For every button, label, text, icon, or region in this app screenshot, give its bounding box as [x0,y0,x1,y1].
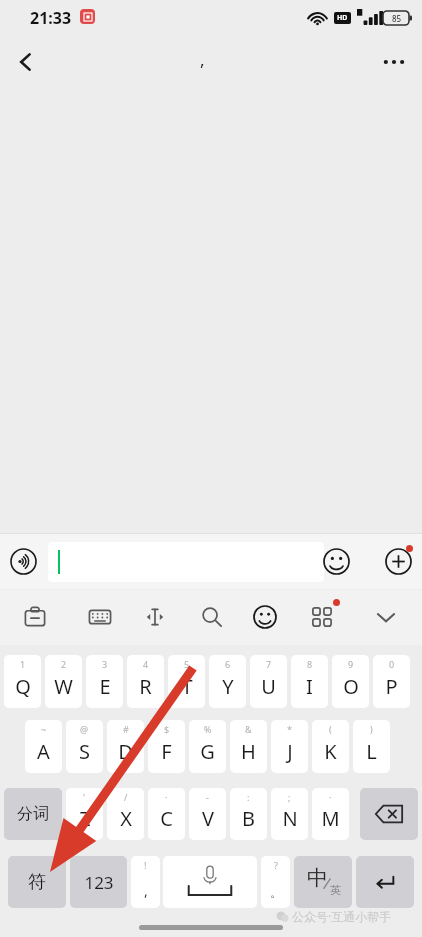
button[interactable]: 5 [168,655,205,708]
staticText: * [287,723,292,735]
staticText: ! [144,859,147,871]
staticText: A [37,738,50,765]
staticText: 中 [307,865,328,891]
staticText: ? [274,859,278,871]
staticText: S [79,738,90,765]
staticText: Q [15,673,31,700]
button[interactable]: ! [131,856,160,908]
staticText: 123 [84,871,114,894]
staticText: 4 [143,658,149,670]
button[interactable]: 9 [332,655,369,708]
staticText: 3 [102,658,108,670]
button[interactable]: 3 [86,655,123,708]
button[interactable]: $ [148,720,185,773]
staticText: I [306,673,313,700]
button[interactable]: : [230,788,267,840]
button[interactable]: 8 [291,655,328,708]
staticText: V [202,805,214,832]
button[interactable]: / [107,788,144,840]
staticText: ; [288,791,291,803]
button[interactable]: More options [372,40,416,84]
staticText: D [118,738,133,765]
button[interactable]: ) [353,720,390,773]
staticText: 分词 [17,804,49,824]
button[interactable]: % [189,720,226,773]
staticText: 8 [307,658,313,670]
staticText: · [329,791,332,803]
button[interactable]: 分词 [4,788,62,840]
staticText: / [124,791,128,803]
button[interactable]: ; [271,788,308,840]
staticText: P [385,673,398,700]
staticText: T [181,673,193,700]
button[interactable]: · [148,788,185,840]
button[interactable]: Search [191,596,233,638]
button[interactable]: Back [4,40,48,84]
button[interactable]: * [271,720,308,773]
button[interactable]: 符 [8,856,66,908]
button[interactable] [48,542,324,582]
staticText: 2 [61,658,67,670]
staticText: ) [370,723,373,735]
staticText: C [160,805,173,832]
staticText: F [161,738,172,765]
staticText: 英 [330,883,341,897]
button[interactable]: ? [261,856,290,908]
staticText: ( [329,723,332,735]
staticText: · [165,791,168,803]
staticText: H [241,738,256,765]
button[interactable]: 123 [70,856,127,908]
button[interactable]: ~ [25,720,62,773]
button[interactable]: 4 [127,655,164,708]
button[interactable]: @ [66,720,103,773]
staticText: 0 [389,658,395,670]
button[interactable]: 7 [250,655,287,708]
button[interactable]: Hide keyboard [365,596,407,638]
button[interactable]: ( [312,720,349,773]
staticText: 符 [28,871,46,894]
staticText: : [247,791,250,803]
button[interactable]: Apps [301,596,343,638]
staticText: U [261,673,276,700]
button[interactable]: Voice input [9,547,38,576]
button[interactable]: 6 [209,655,246,708]
button[interactable]: Switch Chinese English [294,856,352,908]
staticText: W [54,673,73,700]
staticText: O [343,673,359,700]
button[interactable]: 1 [4,655,41,708]
staticText: HD [337,13,348,23]
button[interactable]: Cursor move [134,596,176,638]
button[interactable]: & [230,720,267,773]
button[interactable]: Enter [356,856,414,908]
button[interactable]: · [312,788,349,840]
staticText: , [200,48,205,71]
staticText: # [123,723,129,735]
button[interactable]: 2 [45,655,82,708]
button[interactable]: # [107,720,144,773]
button[interactable]: Emoji [322,547,351,576]
staticText: - [206,791,209,803]
staticText: ~ [41,723,47,735]
staticText: 1 [20,658,26,670]
button[interactable]: 0 [373,655,410,708]
staticText: J [287,738,293,765]
button[interactable]: Keyboard layout [79,596,121,638]
button[interactable]: Backspace [360,788,418,840]
staticText: G [200,738,215,765]
button[interactable]: - [189,788,226,840]
button[interactable]: Sticker [244,596,286,638]
button[interactable]: More functions [384,547,413,576]
staticText: X [120,805,132,832]
staticText: 6 [225,658,231,670]
button[interactable]: ' [66,788,103,840]
staticText: 7 [266,658,272,670]
staticText: % [204,723,212,735]
staticText: N [282,805,298,832]
button[interactable]: Clipboard [14,596,56,638]
button[interactable]: Space [163,856,257,908]
staticText: 公众号·互通小帮手 [292,908,392,924]
staticText: & [245,723,252,735]
staticText: 21:33 [30,7,72,29]
staticText: L [366,738,377,765]
staticText: K [324,738,337,765]
